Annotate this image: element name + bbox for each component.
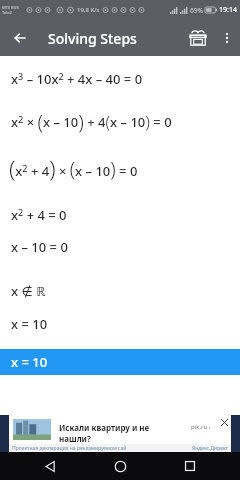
button[interactable]: Close ad (217, 415, 231, 429)
button[interactable]: Home (100, 452, 140, 480)
button[interactable]: Back (30, 452, 70, 480)
staticText: x3 – 10x2 + 4x – 40 = 0 (11, 70, 143, 88)
button[interactable]: Recent apps (170, 452, 210, 480)
staticText: x = 10 (11, 315, 48, 333)
button[interactable]: Rewarded ad (182, 22, 214, 54)
staticText: 69% (190, 6, 203, 15)
staticText: Яндекс.Директ (192, 445, 228, 452)
button[interactable]: More options (214, 25, 240, 51)
staticText: x = 10 (11, 353, 48, 371)
staticText: x ∉ ℝ (11, 282, 46, 300)
staticText: Solving Steps (48, 29, 137, 48)
staticText: Проектная декларация на рекламируемом са… (12, 445, 127, 452)
button[interactable]: x = 10 (0, 349, 240, 375)
staticText: MTS RUS Tele2 (2, 5, 19, 15)
staticText: (x2 + 4) × (x – 10) = 0 (9, 153, 138, 184)
staticText: x2 × (x – 10) + 4(x – 10) = 0 (11, 107, 172, 134)
staticText: 19:14 (219, 5, 237, 15)
staticText: x – 10 = 0 (11, 238, 68, 256)
button[interactable]: pik.ru › (185, 421, 217, 433)
staticText: x2 + 4 = 0 (11, 206, 67, 224)
staticText: Искали квартиру и не нашли? (59, 422, 181, 444)
staticText: pik.ru › (191, 423, 211, 431)
button[interactable]: Back (4, 22, 36, 54)
staticText: 19,8 K/s (77, 6, 100, 14)
